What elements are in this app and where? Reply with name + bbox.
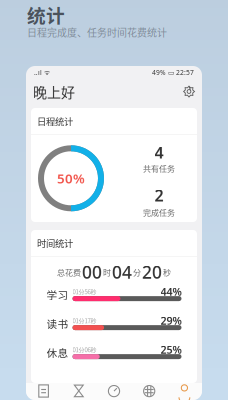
staticText: ‥ıl ᯤ xyxy=(34,68,50,77)
staticText: 完成任务 xyxy=(143,206,175,218)
staticText: 01分06秒 xyxy=(72,345,96,354)
staticText: 日程统计 xyxy=(37,114,73,128)
staticText: 00 xyxy=(82,261,102,284)
button[interactable]: Schedule xyxy=(26,383,61,400)
staticText: 时 xyxy=(103,266,111,278)
staticText: 时间统计 xyxy=(37,236,73,250)
staticText: 晚上好 xyxy=(33,81,75,102)
button[interactable]: Timer xyxy=(61,383,96,400)
button[interactable]: Settings xyxy=(183,85,195,97)
staticText: 49% ▭ 22:57 xyxy=(152,68,194,77)
staticText: 学习 xyxy=(46,287,68,302)
staticText: 总花费 xyxy=(57,266,81,278)
button[interactable]: Stopwatch xyxy=(96,383,132,400)
staticText: 2 xyxy=(154,185,163,206)
staticText: 44% xyxy=(160,284,181,299)
staticText: 01分56秒 xyxy=(72,287,96,296)
staticText: 50% xyxy=(57,169,85,187)
staticText: 读书 xyxy=(46,316,68,331)
staticText: 日程完成度、任务时间花费统计 xyxy=(27,25,167,39)
staticText: 25% xyxy=(160,342,181,357)
staticText: 休息 xyxy=(46,345,68,360)
button[interactable]: Profile xyxy=(167,383,202,400)
staticText: 秒 xyxy=(163,266,171,278)
staticText: 统计 xyxy=(27,1,65,28)
staticText: 04 xyxy=(112,261,132,284)
staticText: 01分17秒 xyxy=(72,316,96,325)
staticText: 29% xyxy=(160,313,181,328)
staticText: 20 xyxy=(142,261,162,284)
staticText: 共有任务 xyxy=(143,162,175,174)
staticText: 分 xyxy=(133,266,141,278)
staticText: 4 xyxy=(154,142,163,163)
button[interactable]: Focus xyxy=(132,383,167,400)
